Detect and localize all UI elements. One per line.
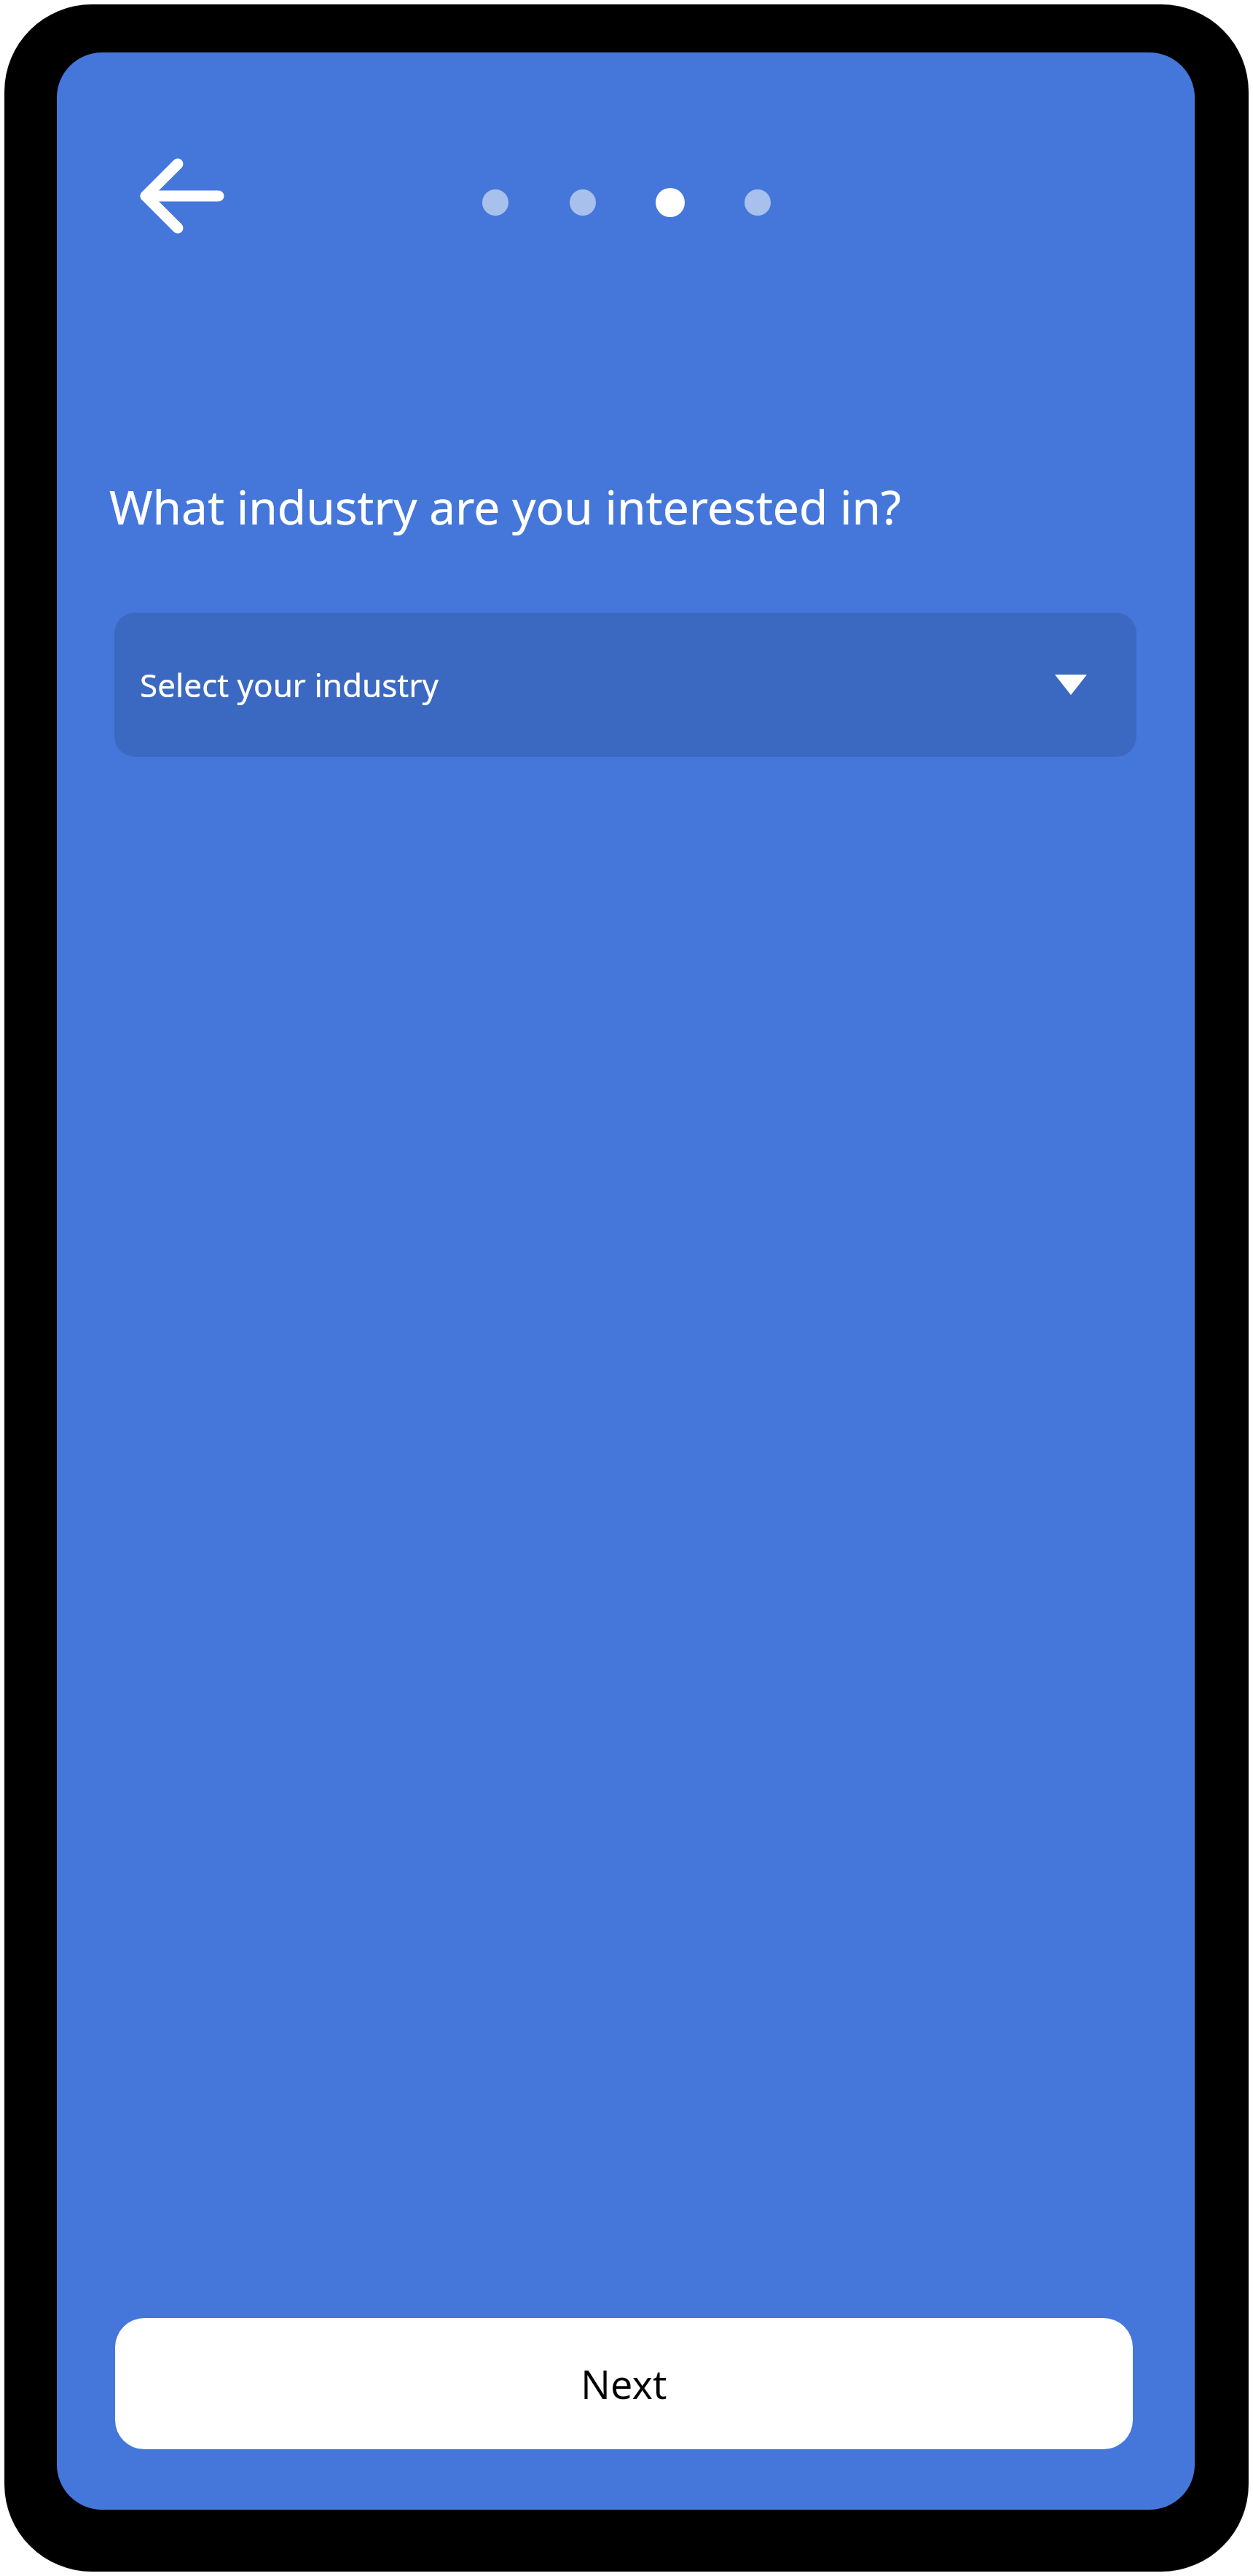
button[interactable]: Page 2 [564, 184, 602, 221]
staticText: Next [581, 2357, 667, 2411]
button[interactable]: Page 3 [651, 184, 689, 221]
staticText: What industry are you interested in? [109, 475, 1129, 538]
button[interactable]: Select your industry [114, 613, 1136, 757]
staticText: Select your industry [140, 663, 439, 707]
button[interactable]: Page 4 [739, 184, 777, 221]
button[interactable]: Back [137, 153, 227, 239]
button[interactable]: Page 1 [476, 184, 514, 221]
button[interactable]: Next [115, 2318, 1133, 2449]
